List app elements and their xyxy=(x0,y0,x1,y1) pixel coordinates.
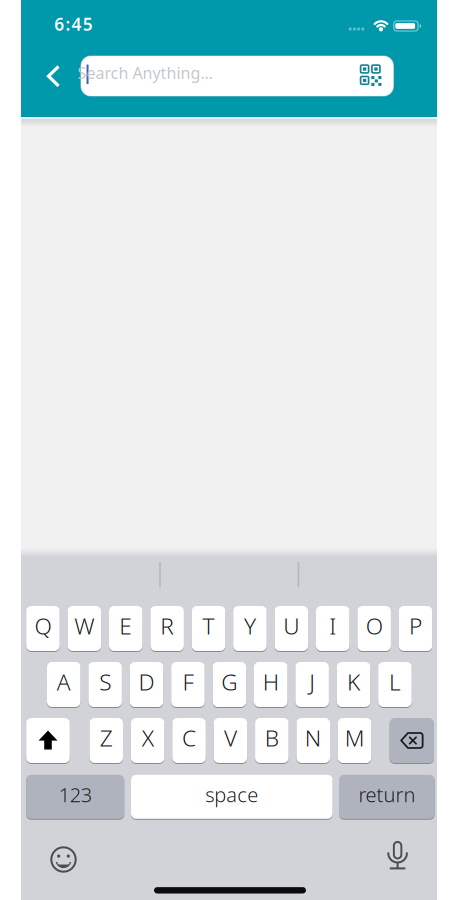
button[interactable]: A xyxy=(47,662,80,708)
staticText: E xyxy=(119,611,132,641)
staticText: Q xyxy=(34,611,51,641)
button[interactable]: Y xyxy=(233,606,267,652)
button[interactable]: D xyxy=(130,662,163,708)
staticText: X xyxy=(142,723,154,753)
staticText: L xyxy=(389,667,401,697)
staticText: 123 xyxy=(59,781,92,808)
button[interactable]: X xyxy=(131,718,164,764)
staticText: F xyxy=(182,667,193,697)
button[interactable]: Dictation xyxy=(382,840,414,872)
button[interactable]: I xyxy=(316,606,349,652)
button[interactable]: L xyxy=(378,662,412,708)
staticText: S xyxy=(99,667,111,697)
button[interactable]: Shift xyxy=(26,718,70,764)
staticText: Y xyxy=(244,611,256,641)
staticText: Z xyxy=(100,723,113,753)
button[interactable]: space xyxy=(131,775,333,820)
button[interactable]: return xyxy=(339,775,435,820)
staticText: A xyxy=(57,667,71,697)
staticText: B xyxy=(265,723,279,753)
staticText: W xyxy=(74,611,94,641)
staticText: space xyxy=(205,781,258,808)
staticText: U xyxy=(283,611,299,641)
staticText: H xyxy=(263,667,279,697)
staticText: T xyxy=(203,611,215,641)
button[interactable]: O xyxy=(357,606,391,652)
staticText: J xyxy=(309,667,315,697)
staticText: M xyxy=(345,723,365,753)
button[interactable]: M xyxy=(338,718,371,764)
button[interactable]: W xyxy=(68,606,101,652)
staticText: V xyxy=(224,723,237,753)
button[interactable]: Back xyxy=(32,60,74,92)
staticText: N xyxy=(305,723,322,753)
button[interactable]: G xyxy=(213,662,246,708)
staticText: Search Anything... xyxy=(77,62,212,83)
button[interactable]: B xyxy=(255,718,289,764)
button[interactable]: K xyxy=(337,662,370,708)
button[interactable]: Emoji xyxy=(47,843,79,875)
button[interactable]: U xyxy=(275,606,308,652)
button[interactable]: Q xyxy=(26,606,60,652)
button[interactable]: Scan QR code xyxy=(355,60,387,92)
staticText: R xyxy=(160,611,174,641)
staticText: D xyxy=(139,667,155,697)
button[interactable]: F xyxy=(171,662,205,708)
button[interactable]: Search Anything... xyxy=(81,56,393,96)
button[interactable]: H xyxy=(254,662,287,708)
button[interactable]: R xyxy=(150,606,184,652)
button[interactable]: J xyxy=(295,662,329,708)
staticText: P xyxy=(409,611,422,641)
button[interactable]: V xyxy=(214,718,247,764)
button[interactable]: C xyxy=(172,718,206,764)
staticText: I xyxy=(329,611,336,641)
button[interactable]: E xyxy=(109,606,142,652)
staticText: O xyxy=(366,611,383,641)
staticText: G xyxy=(221,667,237,697)
button[interactable]: P xyxy=(399,606,432,652)
staticText: return xyxy=(358,781,415,808)
staticText: 6:45 xyxy=(54,12,93,35)
staticText: K xyxy=(347,667,360,697)
button[interactable]: T xyxy=(192,606,225,652)
button[interactable]: N xyxy=(296,718,330,764)
button[interactable]: 123 xyxy=(26,775,124,820)
button[interactable]: Z xyxy=(89,718,123,764)
button[interactable]: S xyxy=(88,662,122,708)
staticText: C xyxy=(182,723,196,753)
button[interactable]: Delete xyxy=(390,718,434,764)
